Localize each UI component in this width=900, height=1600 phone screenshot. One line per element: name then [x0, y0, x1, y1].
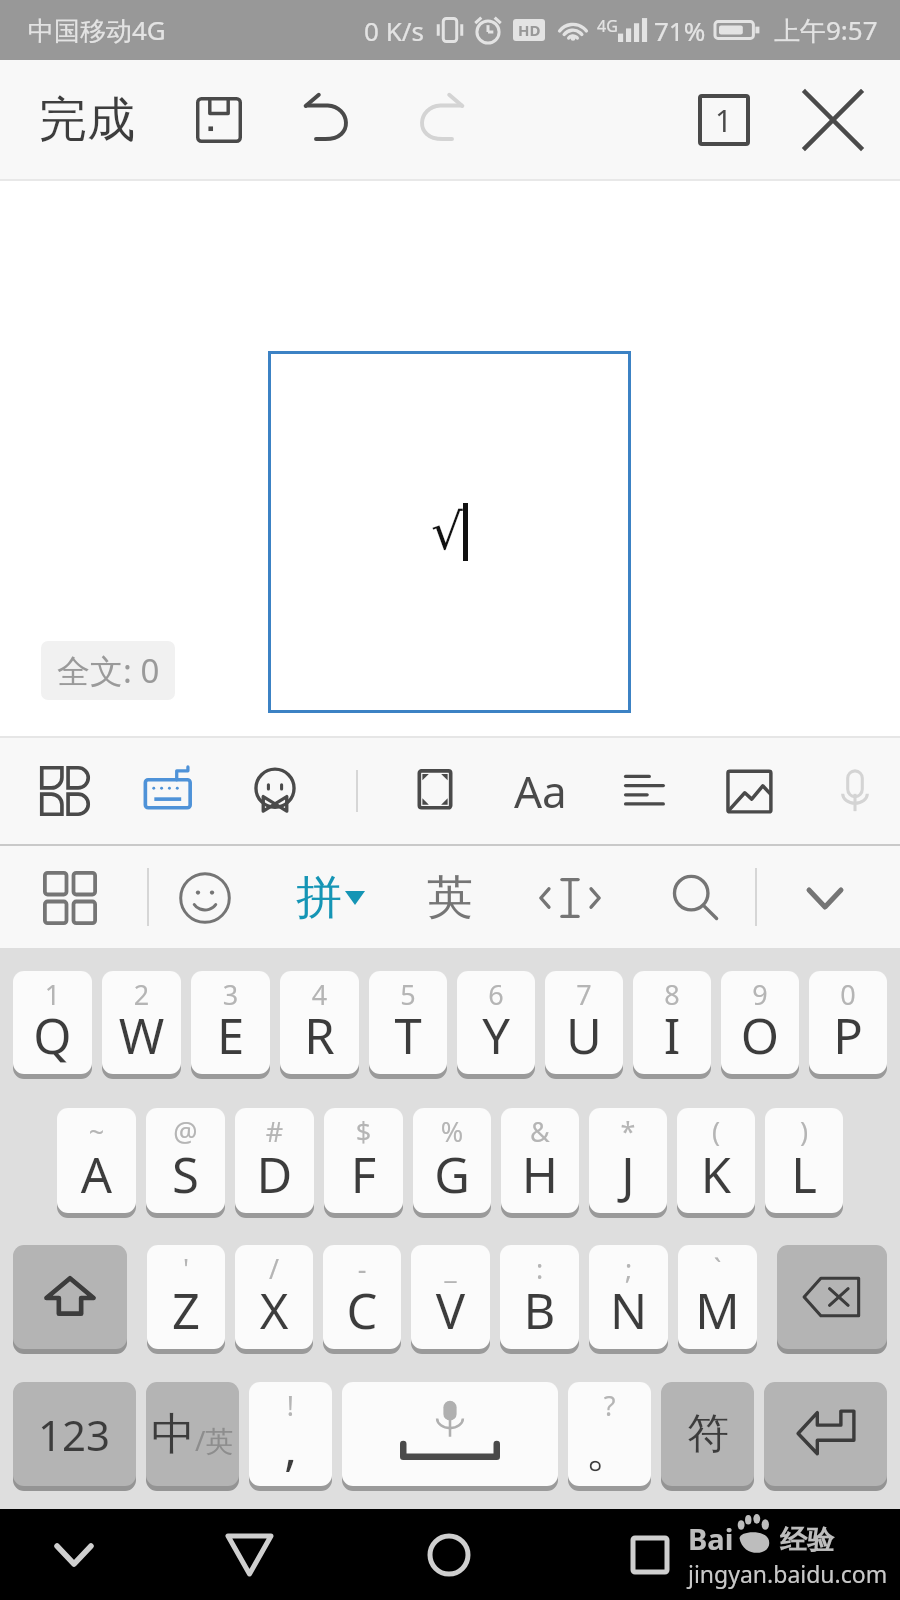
staticText: D — [235, 1141, 314, 1208]
button[interactable]: 1 — [13, 971, 92, 1074]
button[interactable]: Undo — [290, 80, 370, 160]
staticText: 8 — [633, 976, 711, 1013]
staticText: 123 — [38, 1406, 111, 1463]
staticText: 英 — [427, 869, 473, 927]
button[interactable]: 全文: 0 — [41, 641, 175, 700]
staticText: , — [249, 1414, 332, 1481]
button[interactable]: Redo — [398, 80, 478, 160]
staticText: & — [501, 1113, 579, 1150]
staticText: ( — [677, 1113, 755, 1150]
staticText: H — [501, 1141, 579, 1208]
staticText: A — [57, 1141, 136, 1208]
button[interactable]: Emoticons — [165, 852, 245, 944]
button[interactable]: Keyboard — [130, 746, 210, 836]
button[interactable]: Text box — [268, 351, 631, 713]
button[interactable]: 拼 — [280, 852, 380, 944]
button[interactable]: Keyboard layouts — [30, 852, 110, 944]
staticText: 。 — [568, 1419, 651, 1481]
button[interactable]: Backspace — [777, 1245, 887, 1349]
button[interactable]: ? — [568, 1382, 651, 1486]
button[interactable]: 2 — [102, 971, 181, 1074]
button[interactable]: Font size — [500, 746, 580, 836]
staticText: ? — [568, 1387, 651, 1424]
staticText: /英 — [195, 1421, 234, 1459]
staticText: K — [677, 1141, 755, 1208]
button[interactable]: Space — [342, 1382, 558, 1486]
staticText: _ — [411, 1250, 490, 1287]
staticText: 7 — [545, 976, 623, 1013]
button[interactable]: Home — [404, 1509, 494, 1600]
button[interactable]: Search — [655, 852, 735, 944]
button[interactable]: Hide keyboard — [785, 852, 865, 944]
staticText: 5 — [369, 976, 447, 1013]
button[interactable]: 完成 — [20, 80, 154, 160]
staticText: 上午9:57 — [774, 12, 878, 48]
button[interactable]: 7 — [545, 971, 623, 1074]
staticText: I — [633, 1002, 711, 1069]
button[interactable]: 6 — [457, 971, 535, 1074]
staticText: 71% — [654, 13, 706, 48]
button[interactable]: ) — [765, 1108, 843, 1213]
button[interactable]: ; — [589, 1245, 668, 1349]
staticText: jingyan.baidu.com — [688, 1558, 888, 1589]
staticText: Y — [457, 1002, 535, 1069]
staticText: X — [235, 1277, 313, 1344]
button[interactable]: $ — [324, 1108, 403, 1213]
button[interactable]: 中 — [146, 1382, 239, 1486]
button[interactable]: # — [235, 1108, 314, 1213]
staticText: 6 — [457, 976, 535, 1013]
staticText: 0 K/s — [364, 13, 424, 48]
staticText: L — [765, 1141, 843, 1208]
staticText: ~ — [57, 1113, 136, 1150]
button[interactable]: 9 — [721, 971, 799, 1074]
button[interactable]: 0 — [809, 971, 887, 1074]
staticText: ) — [765, 1113, 843, 1150]
button[interactable]: _ — [411, 1245, 490, 1349]
button[interactable]: 123 — [13, 1382, 136, 1486]
button[interactable]: * — [589, 1108, 667, 1213]
button[interactable]: Close — [793, 80, 873, 160]
button[interactable]: Voice input — [815, 746, 895, 836]
staticText: O — [721, 1002, 799, 1069]
button[interactable]: Move cursor — [530, 852, 610, 944]
button[interactable]: ( — [677, 1108, 755, 1213]
button[interactable]: Emoji — [235, 746, 315, 836]
button[interactable]: & — [501, 1108, 579, 1213]
button[interactable]: % — [413, 1108, 491, 1213]
button[interactable]: ` — [678, 1245, 757, 1349]
staticText: Z — [147, 1277, 225, 1344]
staticText: W — [102, 1002, 181, 1069]
button[interactable]: 3 — [191, 971, 270, 1074]
button[interactable]: 英 — [410, 852, 490, 944]
button[interactable]: 5 — [369, 971, 447, 1074]
button[interactable]: 4 — [280, 971, 359, 1074]
button[interactable]: : — [500, 1245, 579, 1349]
button[interactable]: - — [323, 1245, 401, 1349]
staticText: N — [589, 1277, 668, 1344]
button[interactable]: ~ — [57, 1108, 136, 1213]
staticText: R — [280, 1002, 359, 1069]
button[interactable]: 8 — [633, 971, 711, 1074]
button[interactable]: @ — [146, 1108, 225, 1213]
button[interactable]: Shift — [13, 1245, 127, 1349]
button[interactable]: Back — [204, 1509, 294, 1600]
staticText: $ — [324, 1113, 403, 1150]
button[interactable]: Fullscreen — [395, 746, 475, 836]
button[interactable]: ' — [147, 1245, 225, 1349]
button[interactable]: Enter — [764, 1382, 887, 1486]
button[interactable]: / — [235, 1245, 313, 1349]
button[interactable]: Hide keyboard — [29, 1509, 119, 1600]
button[interactable]: Image — [710, 746, 790, 836]
staticText: @ — [146, 1113, 225, 1150]
button[interactable]: 符 — [661, 1382, 754, 1486]
button[interactable]: Apps — [25, 746, 105, 836]
button[interactable]: Align — [605, 746, 685, 836]
button[interactable]: Recents — [605, 1509, 695, 1600]
staticText: - — [323, 1250, 401, 1287]
staticText: 符 — [687, 1408, 729, 1461]
button[interactable]: ! — [249, 1382, 332, 1486]
button[interactable]: Save — [179, 80, 259, 160]
staticText: 4G — [597, 15, 618, 37]
button[interactable]: Pages — [684, 80, 764, 160]
staticText: 0 — [809, 976, 887, 1013]
